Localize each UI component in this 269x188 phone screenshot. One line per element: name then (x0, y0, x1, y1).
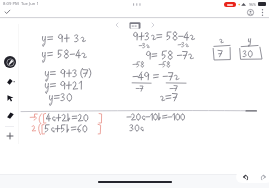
button[interactable]: Next page (149, 21, 157, 29)
button[interactable]: Account (244, 6, 257, 19)
button[interactable]: Redo (256, 171, 269, 183)
button[interactable]: Page thumbnail (129, 21, 141, 30)
button[interactable]: Select (4, 92, 16, 104)
button[interactable]: More options (257, 7, 268, 18)
button[interactable]: Add tool (1, 127, 18, 144)
button[interactable]: Pen (4, 56, 16, 68)
button[interactable]: Previous page (113, 21, 121, 29)
button[interactable]: Done (1, 5, 14, 18)
staticText: 8:09 PM Tue Jun 1 (3, 1, 39, 7)
staticText: 96% (249, 2, 257, 7)
button[interactable]: Highlighter (4, 109, 16, 121)
button[interactable]: Eraser (4, 75, 16, 87)
button[interactable]: Undo (239, 171, 252, 183)
